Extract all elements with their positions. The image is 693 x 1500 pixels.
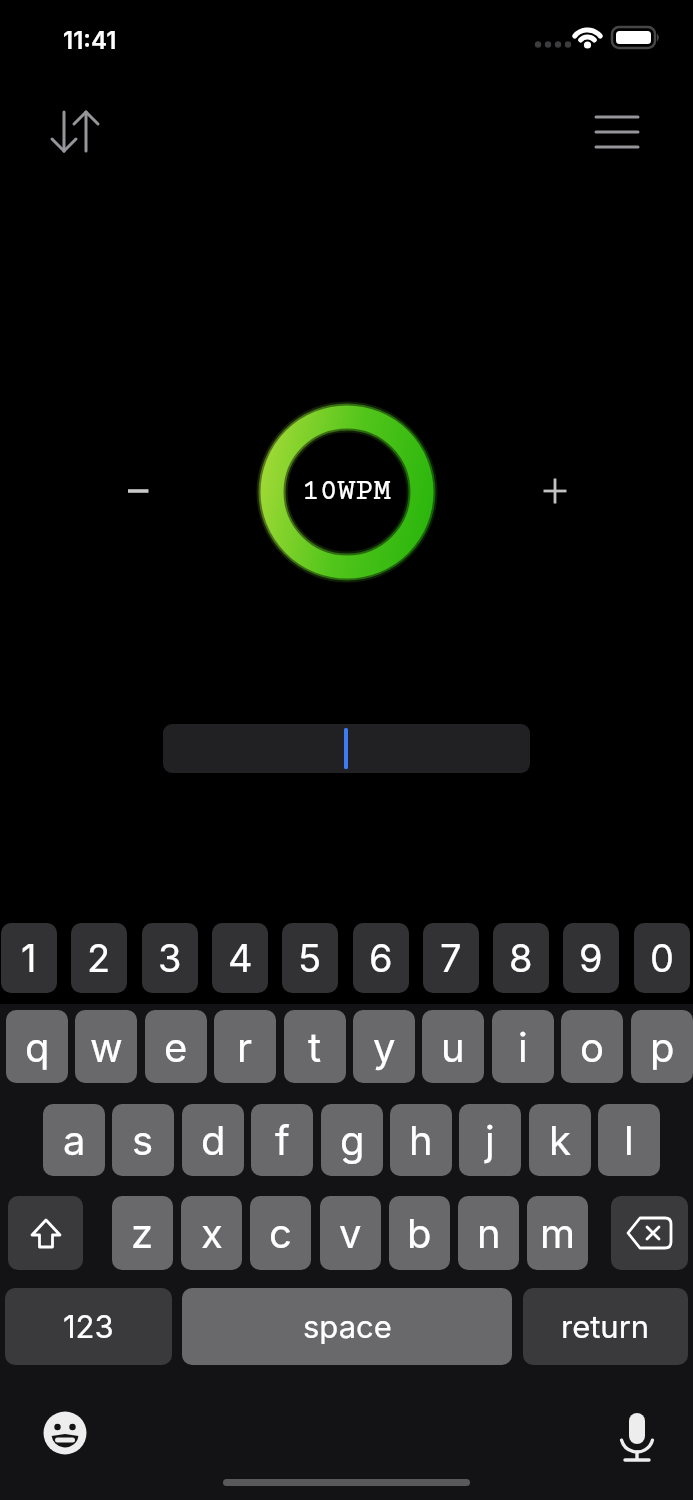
button[interactable]: x [181,1196,242,1270]
button[interactable]: 7 [423,923,479,993]
button[interactable]: f [251,1104,313,1176]
staticText: h [409,1116,433,1164]
staticText: 8 [509,935,533,981]
staticText: return [561,1308,650,1346]
button[interactable] [611,1196,688,1270]
staticText: 4 [228,935,253,981]
button[interactable]: u [422,1010,484,1083]
staticText: 2 [87,935,111,981]
button[interactable]: c [250,1196,311,1270]
staticText: q [25,1023,50,1071]
staticText: 9 [579,935,603,981]
staticText: i [518,1023,528,1071]
staticText: t [308,1023,322,1071]
button[interactable]: 0 [634,923,690,993]
staticText: 123 [63,1308,114,1346]
button[interactable] [163,724,530,773]
button[interactable]: h [390,1104,452,1176]
staticText: j [485,1116,495,1164]
button[interactable]: p [631,1010,693,1083]
staticText: d [201,1116,226,1164]
staticText: o [580,1023,604,1071]
button[interactable]: 8 [493,923,549,993]
button[interactable]: z [112,1196,173,1270]
button[interactable]: b [389,1196,450,1270]
staticText: r [237,1023,253,1071]
button[interactable]: m [527,1196,588,1270]
staticText: x [201,1209,223,1257]
button[interactable]: return [523,1288,688,1365]
button[interactable]: 2 [71,923,127,993]
button[interactable]: q [6,1010,68,1083]
button[interactable]: t [284,1010,346,1083]
button[interactable]: e [145,1010,207,1083]
staticText: w [90,1023,123,1071]
button[interactable]: w [75,1010,137,1083]
button[interactable] [8,1196,83,1270]
button[interactable]: 123 [5,1288,172,1365]
button[interactable]: n [458,1196,519,1270]
button[interactable]: 4 [212,923,268,993]
button[interactable]: 9 [563,923,619,993]
staticText: 11:41 [63,26,117,55]
button[interactable] [535,471,575,511]
button[interactable]: o [561,1010,623,1083]
staticText: c [269,1209,292,1257]
button[interactable] [588,107,646,157]
staticText: z [131,1209,154,1257]
button[interactable]: space [182,1288,512,1365]
staticText: l [624,1116,634,1164]
button[interactable] [42,102,108,162]
staticText: space [303,1308,392,1346]
button[interactable]: 5 [282,923,338,993]
staticText: p [650,1023,675,1071]
staticText: 5 [298,935,322,981]
staticText: 0 [650,935,674,981]
button[interactable]: v [320,1196,381,1270]
staticText: m [540,1209,576,1257]
button[interactable]: 1 [1,923,57,993]
button[interactable]: j [459,1104,521,1176]
staticText: u [441,1023,465,1071]
button[interactable]: g [321,1104,383,1176]
staticText: 6 [369,935,393,981]
staticText: e [164,1023,188,1071]
button[interactable]: r [214,1010,276,1083]
staticText: n [477,1209,501,1257]
staticText: 1 [21,935,37,981]
button[interactable]: d [182,1104,244,1176]
button[interactable] [614,1410,660,1462]
staticText: g [340,1116,365,1164]
staticText: b [407,1209,432,1257]
staticText: 3 [158,935,182,981]
staticText: s [132,1116,154,1164]
button[interactable]: 6 [353,923,409,993]
staticText: k [549,1116,571,1164]
staticText: f [275,1116,290,1164]
button[interactable]: l [598,1104,660,1176]
button[interactable] [42,1410,88,1456]
button[interactable]: s [112,1104,174,1176]
staticText: 7 [440,935,462,981]
button[interactable]: a [43,1104,105,1176]
staticText: 10WPM [302,476,392,509]
staticText: a [63,1116,86,1164]
button[interactable]: 3 [142,923,198,993]
button[interactable] [118,471,158,511]
staticText: v [339,1209,362,1257]
button[interactable]: y [353,1010,415,1083]
staticText: y [373,1023,396,1071]
button[interactable]: k [529,1104,591,1176]
button[interactable]: i [492,1010,554,1083]
